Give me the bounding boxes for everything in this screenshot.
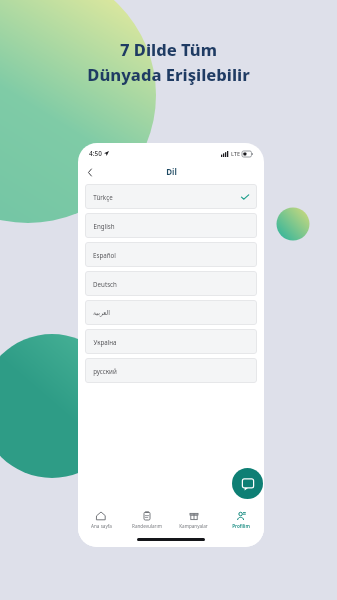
staticText: Українa bbox=[93, 338, 117, 346]
staticText: Español bbox=[93, 251, 116, 259]
button[interactable]: Ana sayfa bbox=[78, 509, 124, 531]
button[interactable]: Türkçe bbox=[85, 184, 257, 209]
button[interactable]: Українa bbox=[85, 329, 257, 354]
staticText: 7 Dilde Tüm bbox=[120, 38, 217, 60]
button[interactable]: Chat bbox=[232, 468, 263, 499]
staticText: LTE bbox=[231, 150, 240, 157]
button[interactable]: Español bbox=[85, 242, 257, 267]
staticText: Dünyada Erişilebilir bbox=[87, 63, 250, 85]
staticText: 4:50 bbox=[89, 149, 102, 158]
button[interactable]: Randevularım bbox=[124, 509, 170, 531]
staticText: Deutsch bbox=[93, 280, 117, 288]
staticText: Profilim bbox=[232, 523, 250, 529]
staticText: русский bbox=[93, 367, 117, 375]
button[interactable]: Back bbox=[83, 165, 97, 179]
button[interactable]: русский bbox=[85, 358, 257, 383]
staticText: العربية bbox=[93, 309, 110, 316]
staticText: Ana sayfa bbox=[91, 523, 112, 529]
button[interactable]: Profilim bbox=[217, 509, 264, 531]
button[interactable]: العربية bbox=[85, 300, 257, 325]
button[interactable]: English bbox=[85, 213, 257, 238]
staticText: Dil bbox=[166, 166, 177, 177]
staticText: Randevularım bbox=[132, 523, 162, 529]
staticText: English bbox=[93, 222, 115, 230]
button[interactable]: Deutsch bbox=[85, 271, 257, 296]
staticText: Kampanyalar bbox=[179, 523, 208, 529]
button[interactable]: Kampanyalar bbox=[170, 509, 217, 531]
staticText: Türkçe bbox=[93, 193, 113, 201]
